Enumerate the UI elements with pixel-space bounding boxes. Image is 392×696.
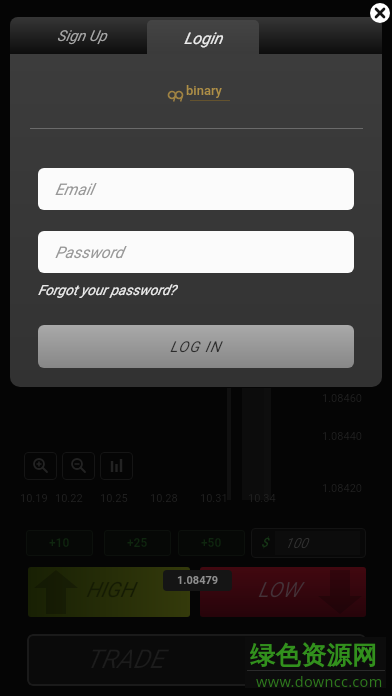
staticText: 1.08479 xyxy=(177,574,219,587)
button[interactable] xyxy=(62,452,95,480)
button[interactable]: Password xyxy=(38,231,354,273)
staticText: HIGH xyxy=(86,578,135,603)
button[interactable]: HIGH xyxy=(28,567,190,617)
button[interactable]: Sign Up xyxy=(14,17,150,54)
staticText: LOG IN xyxy=(170,338,222,356)
staticText: 1.08460 xyxy=(322,392,362,405)
button[interactable]: Email xyxy=(38,168,354,210)
button[interactable] xyxy=(370,3,390,23)
button[interactable] xyxy=(24,452,57,480)
button[interactable]: TRADE xyxy=(27,634,366,686)
staticText: +25 xyxy=(127,536,148,550)
staticText: +10 xyxy=(49,536,70,550)
staticText: Sign Up xyxy=(57,27,107,45)
staticText: 1.08420 xyxy=(322,482,362,495)
staticText: binary xyxy=(186,83,222,98)
staticText: 10.19 xyxy=(20,492,48,505)
staticText: www.downcc.com xyxy=(256,671,383,691)
button[interactable]: Login xyxy=(147,20,259,56)
staticText: $ xyxy=(261,535,269,550)
staticText: TRADE xyxy=(86,644,164,674)
staticText: 10.28 xyxy=(150,492,178,505)
button[interactable]: +50 xyxy=(178,530,245,556)
button[interactable]: $ xyxy=(251,528,366,558)
staticText: 100 xyxy=(285,535,308,551)
button[interactable]: LOW xyxy=(200,567,366,617)
staticText: 10.34 xyxy=(248,492,276,505)
staticText: Login xyxy=(184,29,223,48)
button[interactable]: LOG IN xyxy=(38,325,354,368)
staticText: 10.22 xyxy=(55,492,83,505)
button[interactable]: +10 xyxy=(26,530,93,556)
button[interactable]: Forgot your password? xyxy=(38,282,176,298)
staticText: 10.25 xyxy=(100,492,128,505)
button[interactable]: +25 xyxy=(104,530,171,556)
staticText: Email xyxy=(55,180,94,199)
staticText: LOW xyxy=(258,578,301,603)
staticText: 10.31 xyxy=(200,492,228,505)
staticText: 1.08440 xyxy=(322,430,362,443)
staticText: Password xyxy=(55,243,124,262)
staticText: 绿色资源网 xyxy=(250,640,378,671)
button[interactable] xyxy=(100,452,133,480)
staticText: +50 xyxy=(201,536,222,550)
